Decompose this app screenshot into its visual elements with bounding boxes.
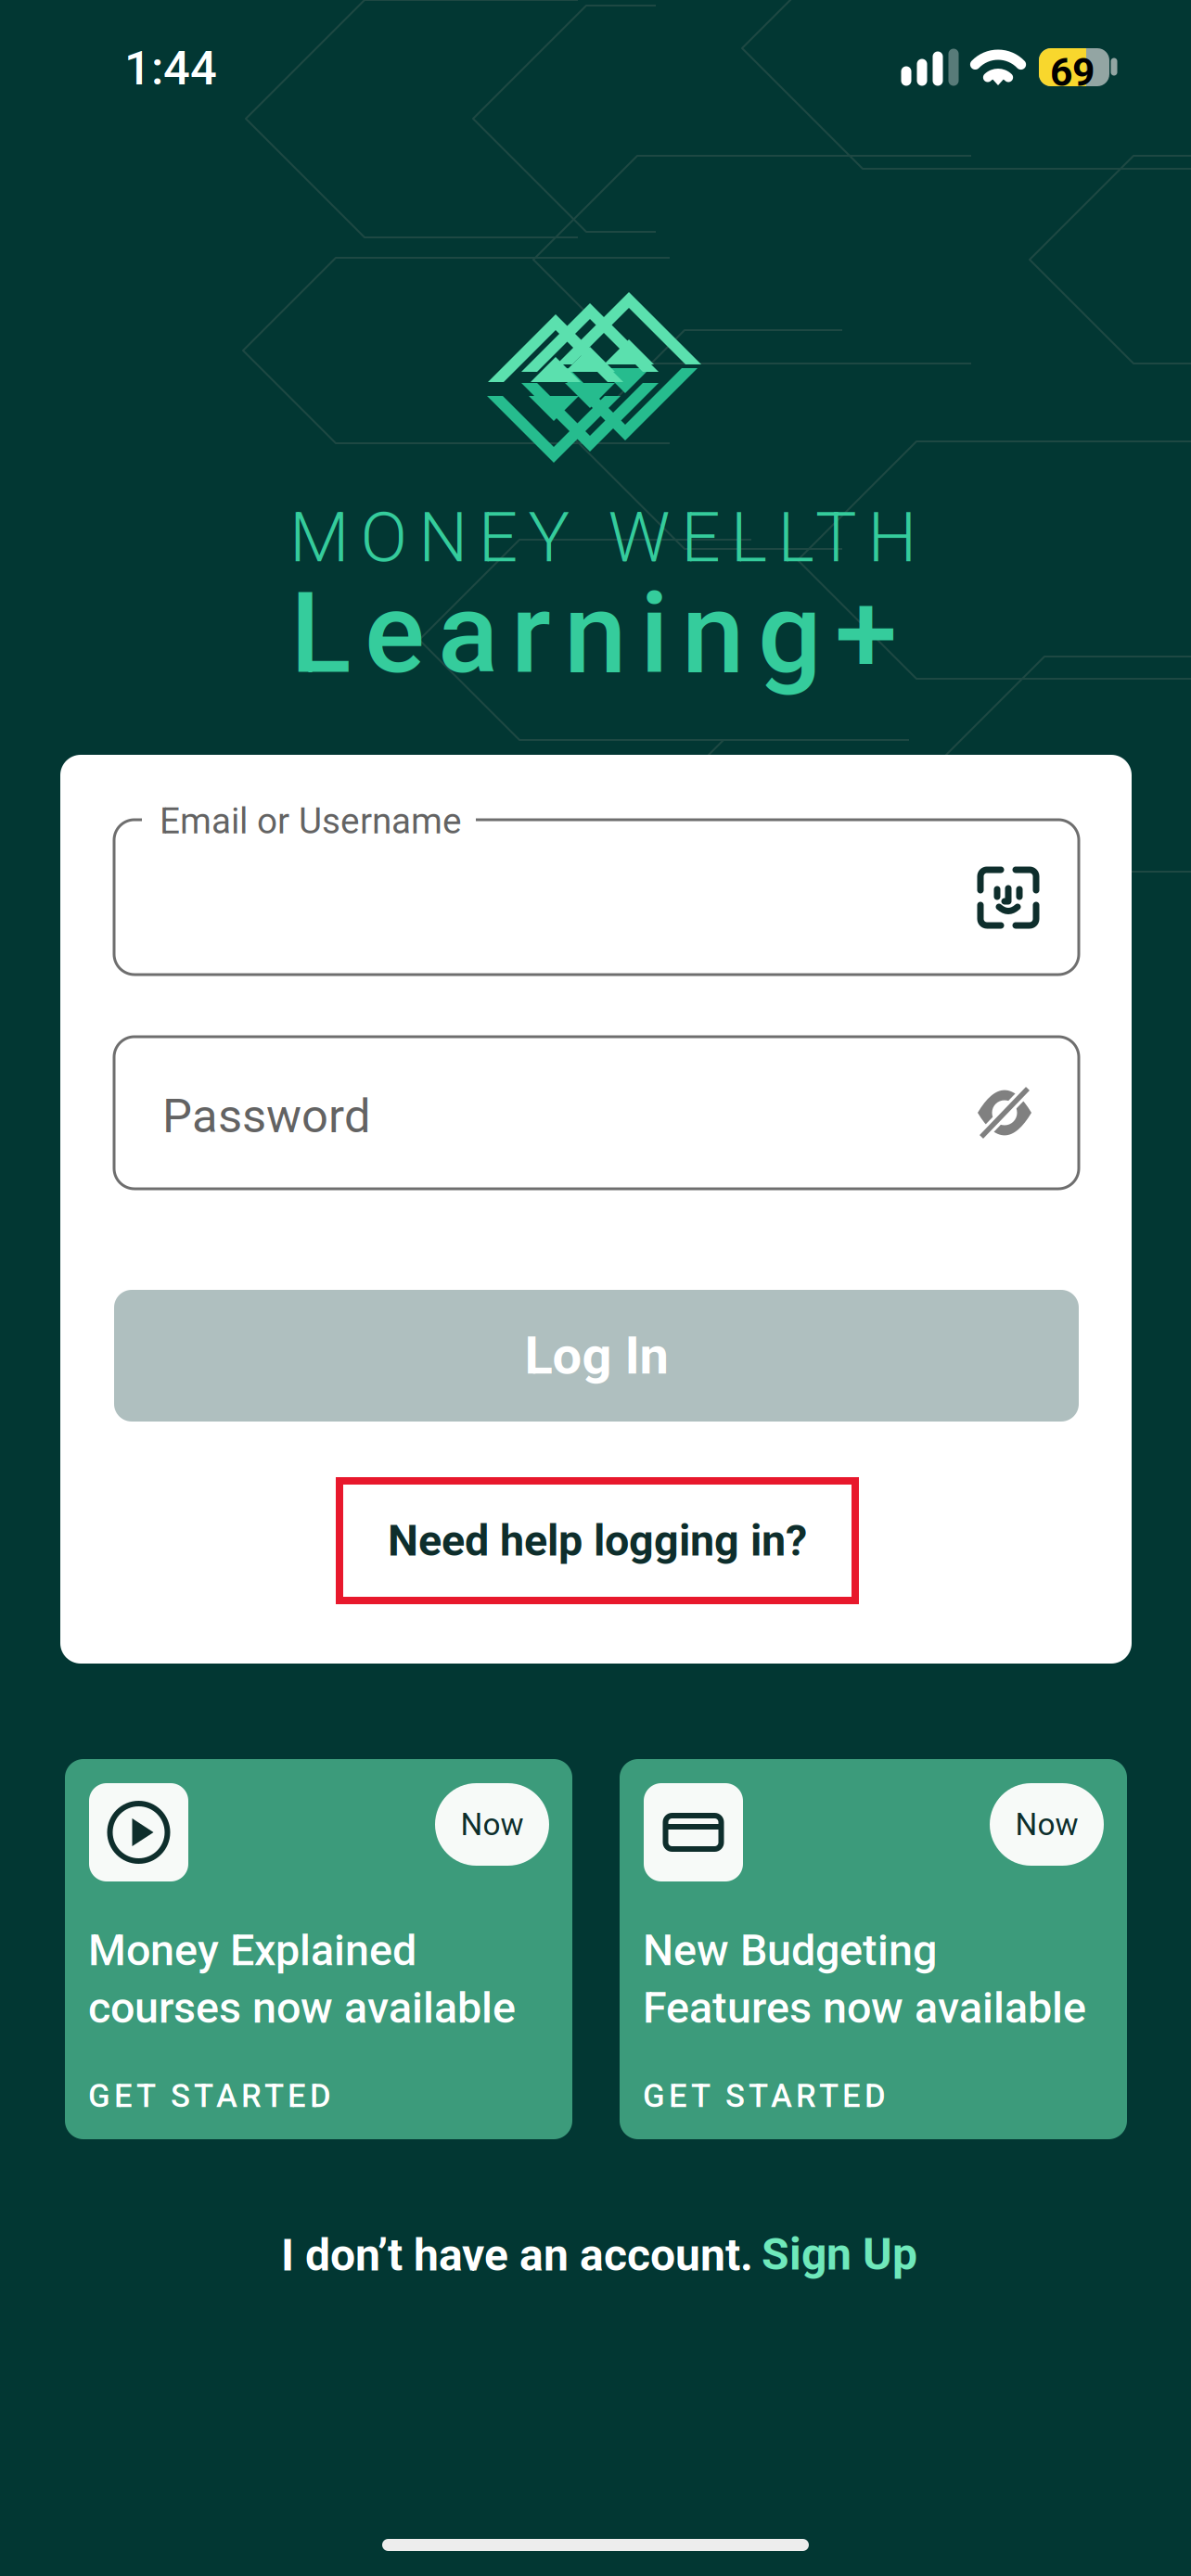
button[interactable]: Sign Up [756, 2225, 923, 2284]
staticText: New Budgeting [643, 1925, 937, 1976]
staticText: MONEY WELLTH [289, 497, 917, 578]
button[interactable]: Now [65, 1759, 572, 2139]
staticText: Features now available [643, 1983, 1086, 2033]
staticText: Money Explained [88, 1925, 416, 1976]
staticText: Now [1015, 1806, 1078, 1843]
button[interactable]: Need help logging in? [339, 1481, 855, 1600]
staticText: I don’t have an account. [281, 2229, 753, 2281]
staticText: GET STARTED [88, 2077, 331, 2115]
button[interactable]: Log In [114, 1290, 1079, 1422]
button[interactable]: Password [114, 1037, 1079, 1189]
staticText: 1:44 [124, 41, 217, 96]
staticText: GET STARTED [643, 2077, 886, 2115]
staticText: Need help logging in? [388, 1515, 807, 1566]
staticText: Email or Username [160, 800, 462, 842]
staticText: 69 [1050, 49, 1095, 96]
staticText: Password [162, 1089, 371, 1144]
staticText: Log In [525, 1325, 668, 1386]
button[interactable]: Email or Username [114, 820, 1079, 975]
button[interactable]: Now [620, 1759, 1127, 2139]
staticText: Now [461, 1806, 524, 1843]
staticText: Learning+ [290, 567, 897, 699]
staticText: courses now available [88, 1983, 516, 2033]
staticText: Sign Up [762, 2228, 917, 2280]
